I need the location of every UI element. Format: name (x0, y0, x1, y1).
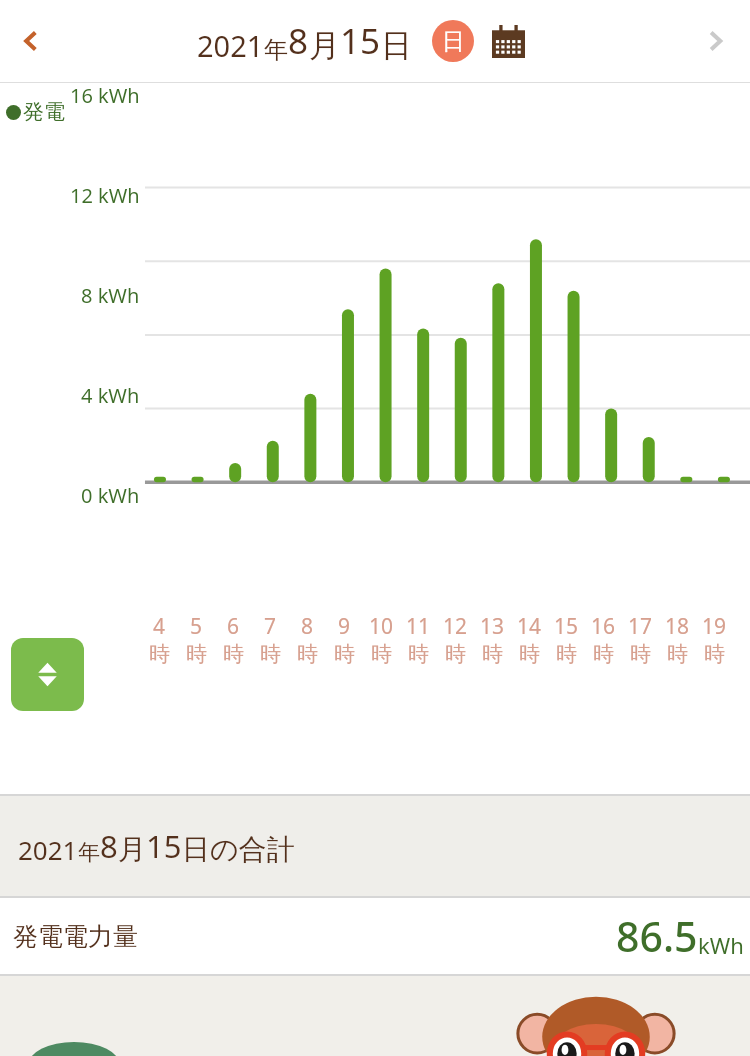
staticText: 時 (519, 641, 540, 667)
staticText: 8 (301, 612, 314, 641)
staticText: 発電電力量 (13, 921, 138, 952)
staticText: 4 (153, 612, 166, 641)
staticText: 時 (149, 641, 170, 667)
staticText: 15 (146, 825, 182, 867)
button[interactable]: Previous day (4, 14, 58, 68)
staticText: 時 (260, 641, 281, 667)
staticText: 10 (369, 612, 394, 641)
staticText: 時 (371, 641, 392, 667)
staticText: 時 (334, 641, 355, 667)
button[interactable]: Calendar (486, 19, 530, 63)
button[interactable]: Daily view (432, 20, 474, 62)
button[interactable]: 発電電力量 (0, 898, 750, 974)
button[interactable]: Next day (688, 14, 742, 68)
staticText: 2021 (197, 26, 264, 65)
staticText: 8 (100, 825, 118, 867)
staticText: 年 (78, 839, 100, 867)
staticText: 86.5 (616, 908, 698, 964)
button[interactable]: Change scale (11, 638, 84, 711)
staticText: 4 kWh (81, 382, 140, 409)
staticText: 日 (182, 832, 210, 867)
staticText: 時 (408, 641, 429, 667)
staticText: 7 (264, 612, 277, 641)
staticText: 8 (288, 17, 309, 65)
staticText: 15 (340, 17, 381, 65)
staticText: 5 (190, 612, 203, 641)
staticText: 時 (630, 641, 651, 667)
staticText: 時 (593, 641, 614, 667)
staticText: 15 (554, 612, 579, 641)
staticText: 月 (309, 26, 340, 65)
staticText: 14 (517, 612, 542, 641)
staticText: 時 (297, 641, 318, 667)
staticText: 19 (702, 612, 727, 641)
staticText: 8 kWh (81, 282, 140, 309)
staticText: 18 (665, 612, 690, 641)
staticText: 16 kWh (70, 82, 140, 109)
staticText: 日 (442, 27, 465, 56)
staticText: 0 kWh (81, 482, 140, 509)
staticText: 16 (591, 612, 616, 641)
staticText: 12 (443, 612, 468, 641)
staticText: 時 (667, 641, 688, 667)
staticText: 9 (338, 612, 351, 641)
staticText: 時 (445, 641, 466, 667)
staticText: 時 (223, 641, 244, 667)
staticText: 時 (704, 641, 725, 667)
staticText: の合計 (210, 832, 295, 867)
staticText: 日 (381, 26, 412, 65)
staticText: 年 (264, 35, 288, 65)
staticText: 6 (227, 612, 240, 641)
staticText: 13 (480, 612, 505, 641)
staticText: 2021 (18, 832, 78, 867)
staticText: 17 (628, 612, 653, 641)
staticText: 発電 (23, 99, 65, 125)
staticText: 12 kWh (70, 182, 140, 209)
staticText: 時 (482, 641, 503, 667)
staticText: 月 (118, 832, 146, 867)
staticText: 時 (556, 641, 577, 667)
staticText: kWh (698, 930, 744, 960)
staticText: 時 (186, 641, 207, 667)
staticText: 11 (406, 612, 431, 641)
